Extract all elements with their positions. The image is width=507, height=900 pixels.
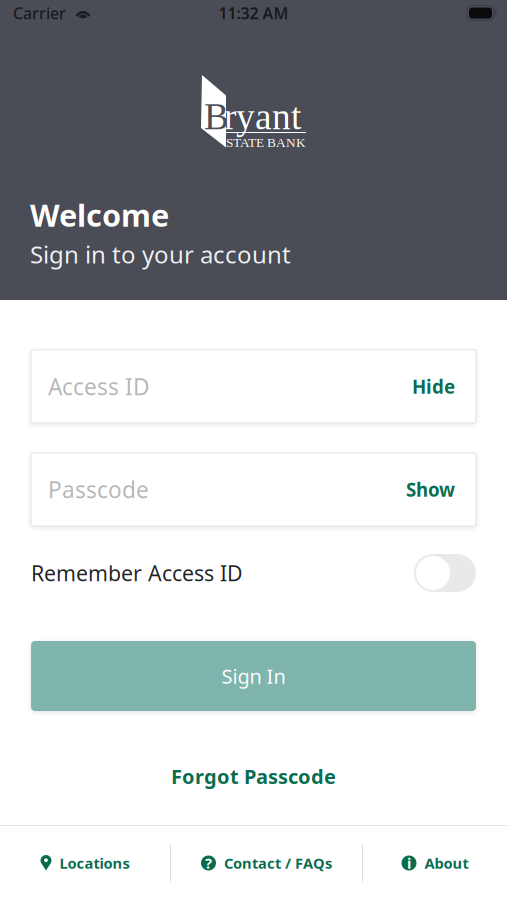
staticText: Sign In	[221, 663, 285, 689]
button[interactable]: Locations	[0, 826, 170, 900]
button[interactable]: Remember Access ID	[414, 554, 476, 592]
staticText: Forgot Passcode	[171, 763, 336, 790]
staticText: ?	[205, 853, 212, 873]
staticText: 11:32 AM	[218, 2, 288, 24]
staticText: Carrier	[13, 2, 66, 24]
staticText: Sign in to your account	[30, 238, 291, 270]
button[interactable]: Forgot Passcode	[155, 753, 352, 800]
staticText: Locations	[59, 853, 129, 873]
button[interactable]: Show	[390, 467, 455, 512]
staticText: Contact / FAQs	[224, 853, 332, 873]
button[interactable]: Sign In	[31, 641, 476, 711]
staticText: B	[204, 96, 229, 137]
staticText: Access ID	[48, 371, 150, 401]
staticText: Show	[406, 477, 455, 502]
button[interactable]: Hide	[396, 364, 455, 409]
staticText: ryant	[224, 96, 301, 137]
staticText: i	[407, 853, 411, 873]
staticText: Hide	[412, 374, 455, 399]
button[interactable]: ?	[171, 826, 362, 900]
staticText: STATE BANK	[226, 135, 306, 150]
button[interactable]: i	[363, 826, 507, 900]
staticText: Passcode	[48, 474, 149, 504]
staticText: About	[424, 853, 468, 873]
staticText: Remember Access ID	[31, 559, 243, 587]
staticText: Welcome	[30, 194, 169, 235]
